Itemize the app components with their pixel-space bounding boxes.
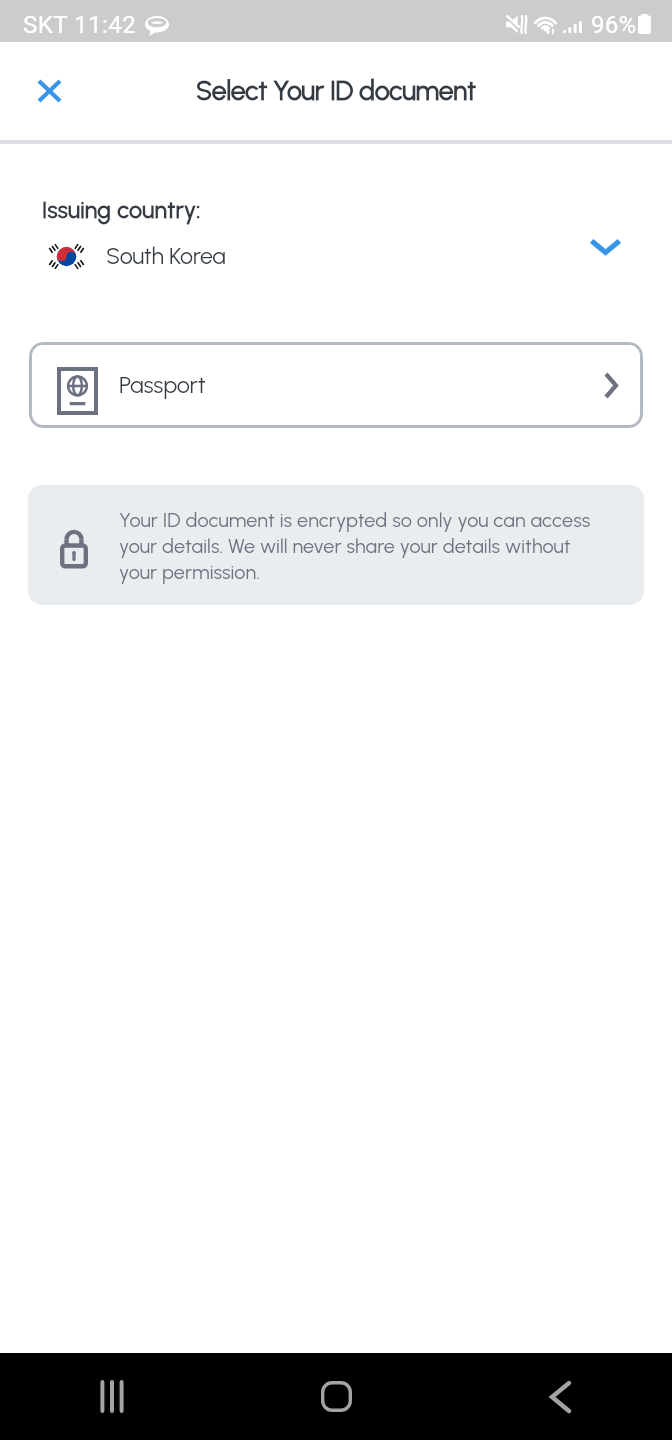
button[interactable]: Back [448, 1353, 672, 1440]
staticText: South Korea [106, 242, 226, 270]
button[interactable]: Change issuing country [576, 223, 634, 271]
button[interactable]: Close [18, 60, 80, 122]
button[interactable]: South Korea [0, 232, 672, 280]
button[interactable]: Passport [29, 342, 643, 428]
staticText: Passport [119, 371, 206, 399]
staticText: Issuing country: [42, 196, 201, 224]
button[interactable]: Home [224, 1353, 448, 1440]
staticText: Your ID document is encrypted so only yo… [119, 508, 599, 584]
staticText: SKT 11:42 [23, 11, 137, 39]
staticText: Select Your ID document [196, 75, 476, 107]
staticText: 96% [591, 11, 637, 39]
button[interactable]: Recent apps [0, 1353, 224, 1440]
